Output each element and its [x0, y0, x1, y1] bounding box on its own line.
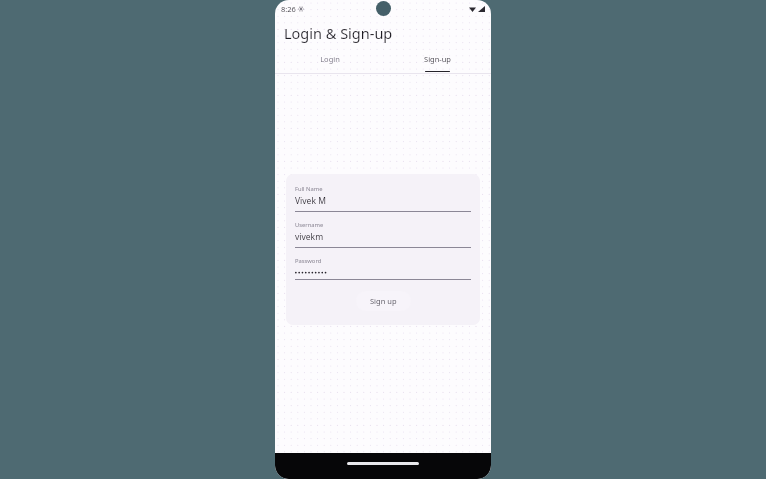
staticText: 8:26: [281, 4, 296, 14]
button[interactable]: Password: [295, 257, 471, 280]
staticText: Login & Sign-up: [284, 23, 393, 43]
staticText: Username: [295, 221, 324, 229]
button[interactable]: Full Name: [295, 185, 471, 212]
other: Home gesture bar: [347, 462, 419, 465]
button[interactable]: Username: [295, 221, 471, 248]
button[interactable]: Sign-up: [383, 54, 491, 72]
button[interactable]: Sign up: [356, 291, 411, 311]
staticText: Vivek M: [295, 195, 326, 207]
staticText: Full Name: [295, 185, 323, 193]
staticText: vivekm: [295, 231, 324, 243]
staticText: Sign up: [370, 296, 397, 306]
staticText: Login: [320, 54, 340, 64]
staticText: Sign-up: [424, 54, 451, 64]
staticText: Password: [295, 257, 322, 265]
button[interactable]: Login: [275, 54, 383, 72]
